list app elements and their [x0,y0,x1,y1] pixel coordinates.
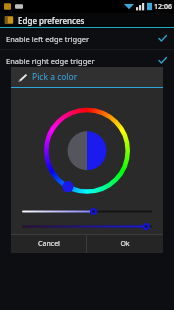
staticText: Enable right edge trigger [6,56,157,66]
staticText: Ok [120,239,130,249]
button[interactable]: Enable right edge trigger [0,50,174,71]
button[interactable]: Ok [87,235,163,253]
button[interactable]: Color slider [22,207,152,216]
button[interactable]: Edge preferences [0,13,174,27]
button[interactable]: Cancel [11,235,86,253]
staticText: Enable left edge trigger [6,34,157,44]
staticText: Cancel [38,239,60,249]
button[interactable]: Enable left edge trigger [0,28,174,49]
staticText: 12:06 [154,2,172,12]
staticText: Pick a color [32,71,78,83]
button[interactable]: Color slider [22,222,152,231]
staticText: Edge preferences [18,15,85,26]
